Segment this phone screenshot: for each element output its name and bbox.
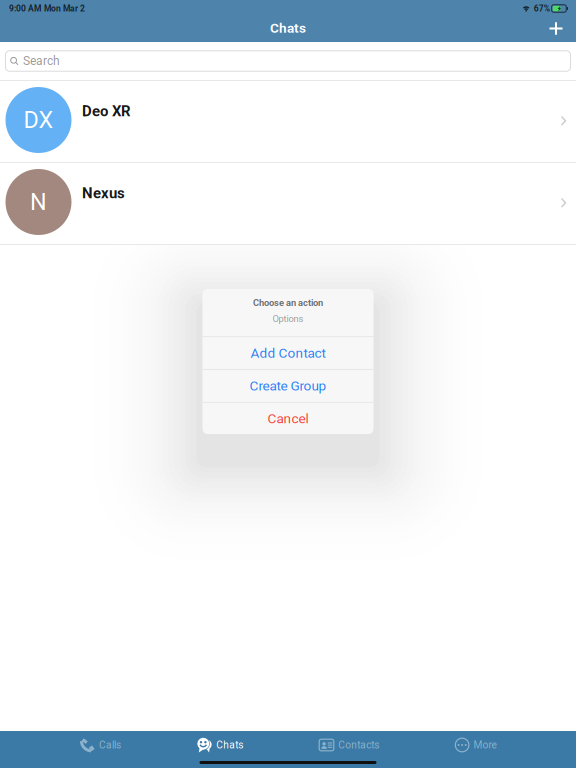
staticText: Chats: [216, 739, 243, 751]
staticText: N: [30, 188, 47, 216]
staticText: 9:00 AM: [9, 3, 41, 13]
staticText: Choose an action: [253, 297, 323, 308]
button[interactable]: DX: [0, 81, 576, 162]
staticText: Calls: [99, 739, 121, 751]
button[interactable]: Calls: [80, 732, 121, 758]
button[interactable]: Create Group: [202, 370, 373, 402]
staticText: 67%: [534, 3, 550, 13]
staticText: DX: [23, 106, 53, 134]
button[interactable]: Cancel: [202, 403, 373, 435]
staticText: Add Contact: [250, 345, 325, 361]
button[interactable]: Contacts: [319, 732, 379, 758]
staticText: Chats: [270, 20, 306, 36]
staticText: More: [473, 739, 496, 751]
button[interactable]: Chats: [197, 732, 243, 758]
staticText: Create Group: [249, 378, 326, 394]
staticText: Search: [23, 54, 60, 68]
staticText: Contacts: [338, 739, 379, 751]
button[interactable]: New chat: [536, 15, 576, 42]
button[interactable]: N: [0, 163, 576, 244]
button[interactable]: Add Contact: [202, 337, 373, 369]
staticText: Nexus: [82, 184, 125, 202]
staticText: Mon Mar 2: [44, 3, 85, 13]
staticText: Options: [272, 313, 303, 324]
staticText: Deo XR: [82, 102, 131, 120]
button[interactable]: More: [455, 732, 496, 758]
staticText: Cancel: [267, 411, 308, 427]
